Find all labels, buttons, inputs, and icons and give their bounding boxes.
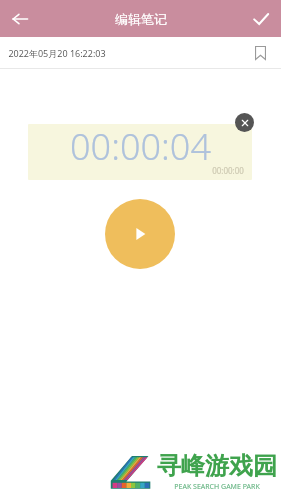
- staticText: 00:00:00: [212, 165, 244, 176]
- button[interactable]: Save: [241, 0, 281, 37]
- button[interactable]: Close timer: [235, 113, 254, 132]
- button[interactable]: Start timer: [105, 199, 175, 269]
- button[interactable]: Bookmark: [249, 42, 271, 64]
- staticText: 2022年05月20 16:22:03: [8, 47, 106, 59]
- button[interactable]: 00:00:04: [28, 124, 252, 180]
- staticText: 00:00:04: [70, 124, 211, 171]
- staticText: PEAK SEARCH GAME PARK: [174, 482, 260, 492]
- staticText: 编辑笔记: [115, 11, 167, 27]
- staticText: 寻峰游戏园: [157, 451, 277, 481]
- button[interactable]: Back: [0, 0, 40, 37]
